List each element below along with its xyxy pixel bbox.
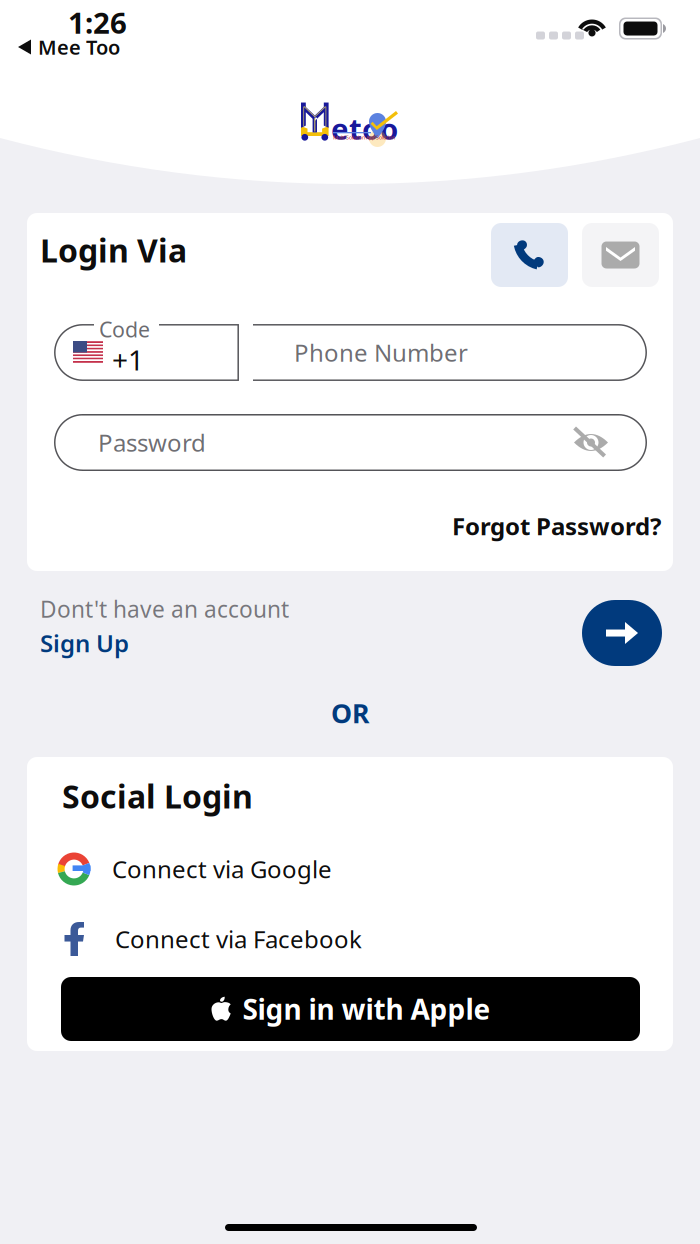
staticText: Connect via Facebook bbox=[115, 923, 362, 955]
staticText: Password bbox=[98, 427, 206, 458]
staticText: Forgot Password? bbox=[452, 510, 661, 542]
staticText: Mee Too bbox=[38, 34, 120, 60]
button[interactable]: Continue bbox=[582, 600, 662, 666]
staticText: Multi Solution App Solution bbox=[333, 134, 395, 141]
staticText: Sign in with Apple bbox=[242, 990, 490, 1028]
button[interactable]: Forgot Password? bbox=[452, 510, 661, 542]
button[interactable]: Sign in with Apple bbox=[61, 977, 640, 1041]
staticText: Sign Up bbox=[40, 627, 129, 659]
button[interactable]: Connect via Facebook bbox=[63, 913, 543, 965]
button[interactable]: Dont't have an account bbox=[40, 594, 440, 658]
button[interactable]: Login with email bbox=[582, 223, 659, 287]
staticText: OR bbox=[331, 695, 369, 731]
button[interactable]: Connect via Google bbox=[57, 843, 537, 895]
staticText: +1 bbox=[112, 341, 144, 378]
button[interactable]: Login with phone number bbox=[491, 223, 568, 287]
staticText: Connect via Google bbox=[112, 853, 332, 885]
staticText: 1:26 bbox=[68, 3, 127, 42]
staticText: Dont't have an account bbox=[40, 594, 289, 624]
staticText: etoo bbox=[331, 109, 398, 148]
staticText: Code bbox=[99, 315, 150, 343]
staticText: Social Login bbox=[62, 775, 253, 817]
staticText: Phone Number bbox=[294, 337, 468, 368]
staticText: Login Via bbox=[40, 229, 187, 271]
